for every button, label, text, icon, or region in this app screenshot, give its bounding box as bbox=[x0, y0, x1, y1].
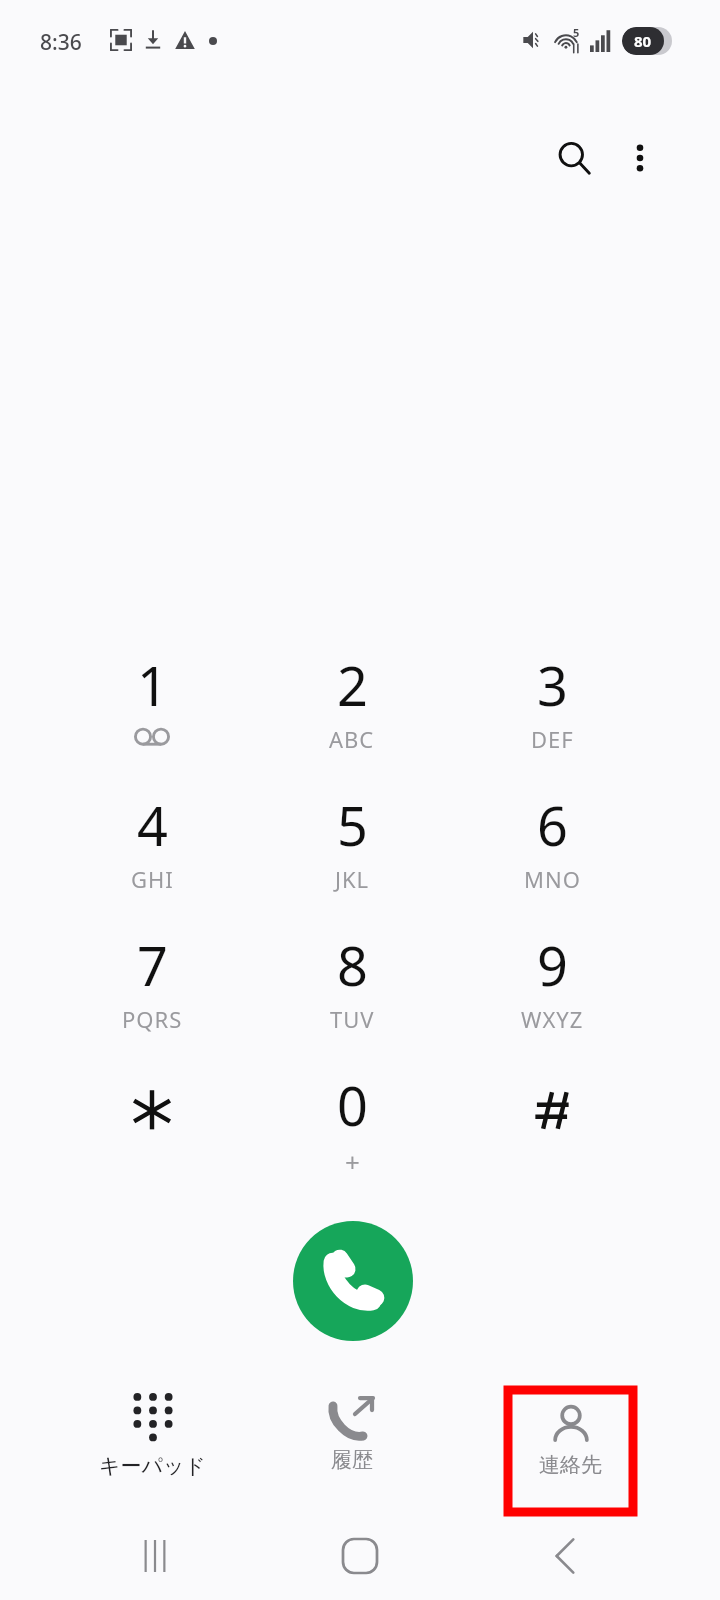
staticText: WXYZ bbox=[521, 1004, 584, 1034]
button[interactable]: Home bbox=[310, 1512, 410, 1600]
staticText: MNO bbox=[524, 864, 581, 894]
staticText: 9 bbox=[537, 928, 568, 1002]
staticText: 5 bbox=[573, 25, 580, 40]
staticText: 4 bbox=[137, 788, 168, 862]
staticText: 3 bbox=[537, 648, 568, 722]
button[interactable]: 2 bbox=[262, 648, 442, 780]
staticText: 履歴 bbox=[331, 1447, 373, 1473]
staticText: + bbox=[345, 1144, 361, 1179]
button[interactable]: 0 bbox=[262, 1068, 442, 1200]
button[interactable]: 8 bbox=[262, 928, 442, 1060]
button[interactable]: 3 bbox=[462, 648, 642, 780]
button[interactable]: Recents bbox=[105, 1512, 205, 1600]
button[interactable]: 1 bbox=[62, 648, 242, 780]
staticText: 2 bbox=[337, 648, 368, 722]
button[interactable] bbox=[62, 1068, 242, 1200]
button[interactable]: 5 bbox=[262, 788, 442, 920]
staticText: 0 bbox=[337, 1068, 368, 1142]
staticText: ABC bbox=[329, 724, 375, 754]
staticText: 7 bbox=[137, 928, 168, 1002]
staticText: 1 bbox=[137, 648, 168, 722]
button[interactable]: 連絡先 bbox=[508, 1390, 633, 1512]
staticText: 80 bbox=[634, 31, 652, 51]
staticText: 8 bbox=[337, 928, 368, 1002]
staticText: DEF bbox=[531, 724, 574, 754]
staticText: 8:36 bbox=[40, 28, 82, 57]
staticText: TUV bbox=[330, 1004, 375, 1034]
button[interactable]: 4 bbox=[62, 788, 242, 920]
button[interactable]: 6 bbox=[462, 788, 642, 920]
button[interactable]: More options bbox=[606, 124, 674, 192]
staticText: 連絡先 bbox=[539, 1452, 602, 1478]
staticText: 6 bbox=[537, 788, 568, 862]
button[interactable]: 履歴 bbox=[272, 1385, 432, 1507]
button[interactable]: Call bbox=[293, 1221, 413, 1341]
staticText: GHI bbox=[131, 864, 174, 894]
staticText: PQRS bbox=[122, 1004, 183, 1034]
staticText: JKL bbox=[335, 864, 370, 894]
staticText: キーパッド bbox=[99, 1453, 206, 1479]
button[interactable]: 7 bbox=[62, 928, 242, 1060]
button[interactable]: 9 bbox=[462, 928, 642, 1060]
button[interactable]: キーパッド bbox=[72, 1385, 232, 1507]
button[interactable] bbox=[462, 1068, 642, 1200]
button[interactable]: Back bbox=[515, 1512, 615, 1600]
staticText: 5 bbox=[337, 788, 368, 862]
button[interactable]: Search bbox=[540, 124, 608, 192]
